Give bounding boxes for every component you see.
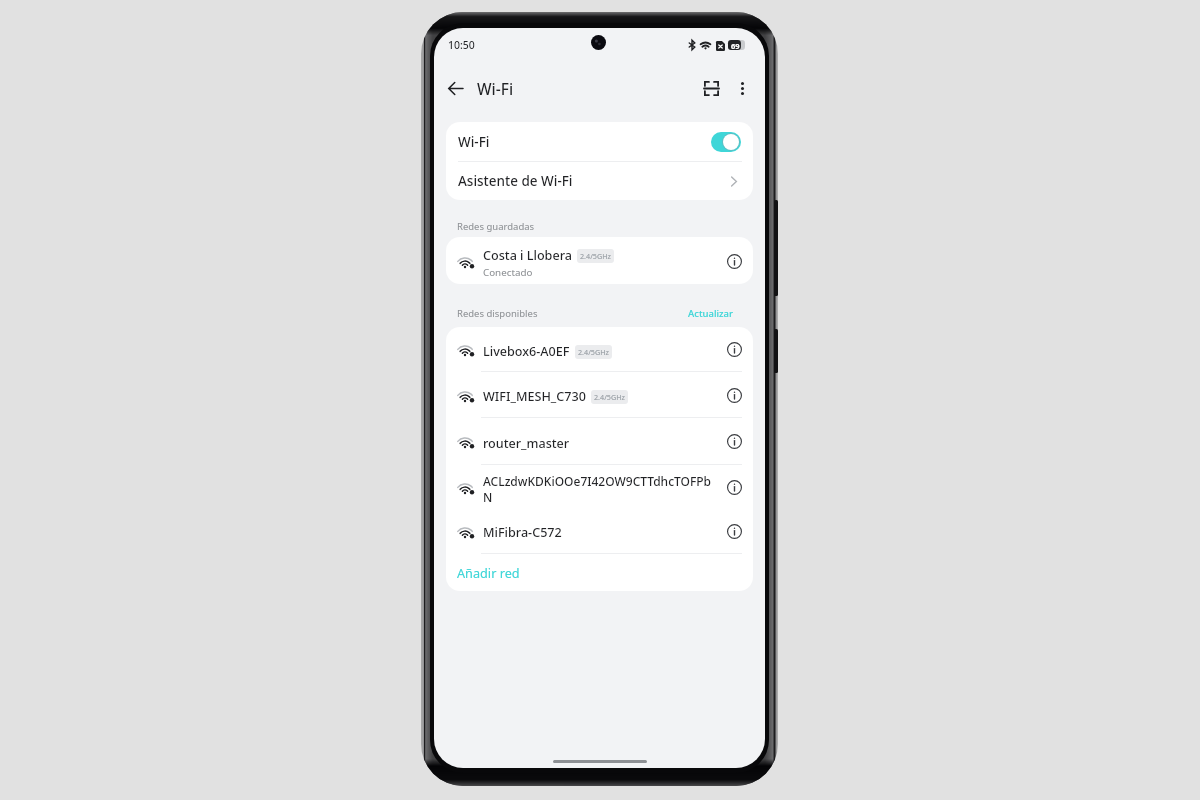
staticText: router_master: [483, 435, 570, 452]
button[interactable]: Livebox6-A0EF: [446, 327, 753, 371]
button[interactable]: Actualizar: [684, 305, 738, 322]
staticText: MiFibra-C572: [483, 524, 562, 541]
staticText: Costa i Llobera: [483, 247, 572, 264]
button[interactable]: Network details: [723, 430, 745, 452]
button[interactable]: router_master: [446, 418, 753, 464]
staticText: Redes disponibles: [457, 307, 538, 320]
button[interactable]: Network details: [723, 250, 745, 272]
staticText: 2.4/5GHz: [578, 347, 609, 357]
staticText: Conectado: [483, 266, 533, 279]
button[interactable]: Costa i Llobera: [446, 237, 753, 284]
staticText: Actualizar: [688, 307, 734, 320]
button[interactable]: Scan QR code: [693, 70, 729, 106]
button[interactable]: Network details: [723, 338, 745, 360]
staticText: 2.4/5GHz: [580, 251, 611, 261]
button[interactable]: ACLzdwKDKiOOe7I42OW9CTTdhcTOFPbN: [446, 465, 753, 508]
staticText: ACLzdwKDKiOOe7I42OW9CTTdhcTOFPbN: [483, 473, 717, 505]
button[interactable]: Back: [437, 70, 473, 106]
button[interactable]: Wi-Fi on: [711, 132, 741, 152]
staticText: 69: [731, 41, 740, 51]
staticText: Wi-Fi: [458, 133, 490, 151]
staticText: Redes guardadas: [457, 220, 535, 233]
staticText: Añadir red: [457, 564, 520, 581]
button[interactable]: MiFibra-C572: [446, 508, 753, 553]
button[interactable]: Wi-Fi: [446, 122, 753, 161]
staticText: 2.4/5GHz: [594, 392, 625, 402]
staticText: Wi-Fi: [477, 78, 514, 99]
staticText: WIFI_MESH_C730: [483, 388, 586, 405]
staticText: Asistente de Wi-Fi: [458, 172, 573, 190]
button[interactable]: More options: [724, 70, 760, 106]
staticText: 10:50: [448, 38, 475, 52]
button[interactable]: Asistente de Wi-Fi: [446, 162, 753, 200]
staticText: Livebox6-A0EF: [483, 343, 570, 360]
button[interactable]: WIFI_MESH_C730: [446, 372, 753, 417]
button[interactable]: Network details: [723, 520, 745, 542]
button[interactable]: Añadir red: [446, 554, 753, 591]
button[interactable]: Network details: [723, 476, 745, 498]
button[interactable]: Network details: [723, 384, 745, 406]
